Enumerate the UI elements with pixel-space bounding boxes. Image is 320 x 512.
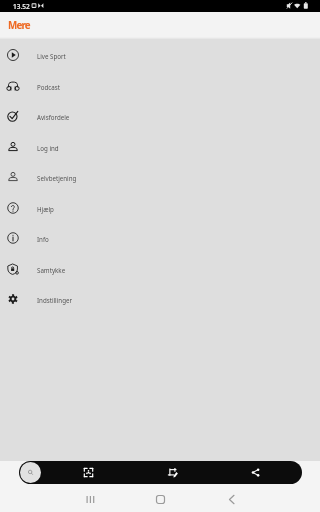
button[interactable]: Live Sport xyxy=(0,39,320,70)
button[interactable]: Hjælp xyxy=(0,192,320,223)
staticText: Info xyxy=(37,235,49,243)
staticText: Log ind xyxy=(37,144,59,152)
staticText: Samtykke xyxy=(37,266,66,274)
button[interactable]: Samtykke xyxy=(0,253,320,284)
button[interactable]: Info xyxy=(0,222,320,253)
staticText: Mere xyxy=(8,19,30,32)
staticText: Indstillinger xyxy=(37,296,72,304)
button[interactable]: Avisfordele xyxy=(0,100,320,131)
button[interactable]: Scan xyxy=(77,461,100,484)
button[interactable]: Rediger xyxy=(161,461,184,484)
button[interactable]: Log ind xyxy=(0,131,320,162)
staticText: Live Sport xyxy=(37,52,66,60)
staticText: Hjælp xyxy=(37,205,54,213)
button[interactable]: Selvbetjening xyxy=(0,161,320,192)
staticText: Avisfordele xyxy=(37,113,70,121)
button[interactable]: Søg xyxy=(20,462,41,483)
button[interactable]: Indstillinger xyxy=(0,283,320,314)
staticText: 13.52 xyxy=(13,2,30,11)
button[interactable]: Podcast xyxy=(0,70,320,101)
button[interactable]: Del xyxy=(244,461,267,484)
staticText: Podcast xyxy=(37,83,60,91)
staticText: Selvbetjening xyxy=(37,174,77,182)
